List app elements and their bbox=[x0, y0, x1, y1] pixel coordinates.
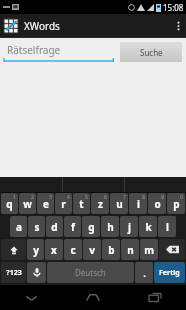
staticText: z bbox=[98, 197, 103, 211]
staticText: n bbox=[127, 243, 134, 257]
staticText: g bbox=[88, 220, 95, 234]
staticText: x bbox=[51, 243, 57, 257]
staticText: . bbox=[143, 267, 146, 279]
button[interactable]: v bbox=[83, 239, 101, 260]
button[interactable]: l bbox=[158, 216, 176, 237]
staticText: q bbox=[6, 197, 13, 211]
staticText: c bbox=[70, 243, 76, 257]
staticText: 0 bbox=[180, 194, 183, 201]
staticText: k bbox=[145, 220, 152, 234]
button[interactable]: o bbox=[148, 193, 166, 214]
button[interactable]: Rätselfrage bbox=[4, 43, 114, 62]
staticText: f bbox=[71, 220, 75, 234]
button[interactable]: a bbox=[10, 216, 27, 237]
staticText: 6 bbox=[104, 194, 107, 201]
staticText: 9 bbox=[161, 194, 164, 201]
button[interactable]: u bbox=[110, 193, 128, 214]
button[interactable]: Recent apps bbox=[124, 285, 186, 310]
staticText: p bbox=[173, 197, 180, 211]
button[interactable]: Voice input bbox=[27, 262, 46, 283]
staticText: XWords bbox=[24, 19, 60, 33]
staticText: d bbox=[51, 220, 58, 234]
staticText: 4 bbox=[67, 194, 70, 201]
staticText: 7 bbox=[123, 194, 126, 201]
staticText: e bbox=[43, 197, 49, 211]
staticText: ?123 bbox=[6, 268, 22, 278]
staticText: b bbox=[108, 243, 115, 257]
button[interactable]: Fertig bbox=[154, 262, 185, 283]
button[interactable]: More options bbox=[170, 14, 186, 37]
staticText: o bbox=[154, 197, 161, 211]
button[interactable]: p bbox=[167, 193, 185, 214]
button[interactable]: x bbox=[45, 239, 63, 260]
staticText: a bbox=[16, 220, 22, 234]
button[interactable]: z bbox=[91, 193, 109, 214]
staticText: Fertig bbox=[159, 268, 180, 278]
button[interactable]: Suche bbox=[120, 42, 182, 62]
button[interactable]: e bbox=[37, 193, 54, 214]
button[interactable]: h bbox=[101, 216, 119, 237]
button[interactable]: Shift bbox=[1, 239, 26, 260]
staticText: Deutsch bbox=[75, 267, 106, 278]
button[interactable]: b bbox=[102, 239, 120, 260]
staticText: l bbox=[166, 220, 169, 234]
button[interactable]: i bbox=[129, 193, 147, 214]
button[interactable]: k bbox=[139, 216, 157, 237]
button[interactable]: f bbox=[64, 216, 81, 237]
button[interactable]: d bbox=[46, 216, 63, 237]
staticText: s bbox=[34, 220, 40, 234]
button[interactable]: s bbox=[28, 216, 45, 237]
staticText: m bbox=[144, 243, 154, 257]
button[interactable]: r bbox=[55, 193, 72, 214]
staticText: 3 bbox=[49, 194, 52, 201]
button[interactable]: j bbox=[120, 216, 138, 237]
button[interactable]: m bbox=[140, 239, 158, 260]
staticText: v bbox=[89, 243, 95, 257]
staticText: y bbox=[33, 243, 39, 257]
button[interactable]: y bbox=[27, 239, 44, 260]
button[interactable]: Deutsch bbox=[47, 262, 134, 283]
staticText: j bbox=[128, 220, 131, 234]
staticText: r bbox=[61, 197, 66, 211]
button[interactable]: Home bbox=[62, 285, 124, 310]
staticText: t bbox=[79, 197, 84, 211]
staticText: Rätselfrage bbox=[7, 43, 61, 57]
button[interactable]: q bbox=[1, 193, 18, 214]
staticText: 15:08 bbox=[163, 2, 184, 13]
staticText: 2 bbox=[31, 194, 34, 201]
button[interactable]: n bbox=[121, 239, 139, 260]
button[interactable]: . bbox=[135, 262, 153, 283]
staticText: u bbox=[116, 197, 123, 211]
staticText: 1 bbox=[13, 194, 16, 201]
button[interactable]: ?123 bbox=[1, 262, 26, 283]
button[interactable]: t bbox=[73, 193, 90, 214]
button[interactable]: w bbox=[19, 193, 36, 214]
button[interactable]: Back bbox=[0, 285, 62, 310]
staticText: 5 bbox=[85, 194, 88, 201]
staticText: 8 bbox=[142, 194, 145, 201]
staticText: Suche bbox=[140, 47, 163, 58]
staticText: h bbox=[107, 220, 114, 234]
staticText: i bbox=[137, 197, 140, 211]
button[interactable]: c bbox=[64, 239, 82, 260]
button[interactable]: g bbox=[82, 216, 100, 237]
button[interactable]: Delete bbox=[159, 239, 185, 260]
staticText: w bbox=[23, 197, 32, 211]
